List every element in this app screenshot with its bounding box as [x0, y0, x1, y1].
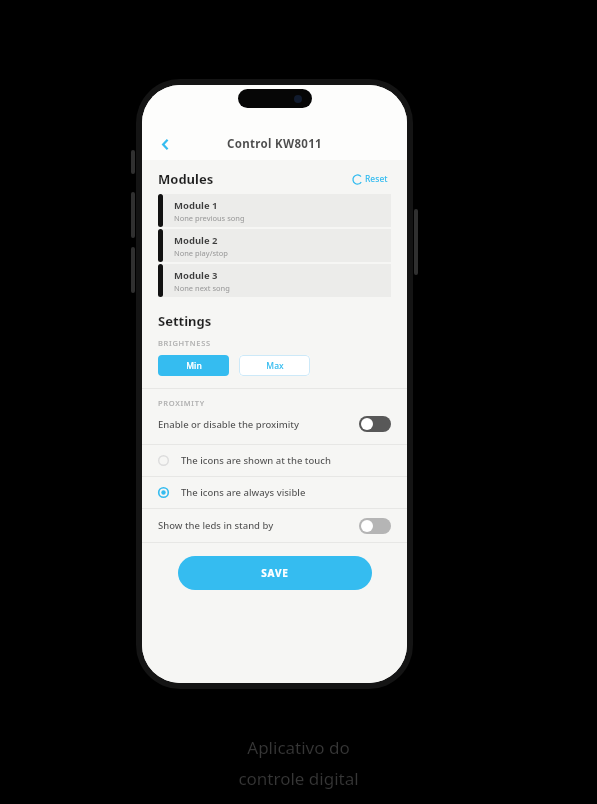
- button[interactable]: Module 3: [158, 264, 391, 297]
- staticText: The icons are shown at the touch: [181, 454, 331, 467]
- staticText: Module 1: [174, 199, 218, 212]
- button[interactable]: Toggle: [359, 518, 391, 534]
- button[interactable]: Back: [153, 132, 177, 156]
- button[interactable]: Max: [239, 355, 310, 376]
- staticText: Max: [266, 360, 284, 372]
- button[interactable]: The icons are shown at the touch: [142, 445, 407, 476]
- button[interactable]: Show the leds in stand by: [142, 509, 407, 542]
- staticText: BRIGHTNESS: [158, 338, 211, 348]
- staticText: Min: [186, 360, 202, 372]
- staticText: Modules: [158, 170, 214, 188]
- button[interactable]: Enable or disable the proximity: [142, 412, 407, 436]
- staticText: The icons are always visible: [181, 486, 306, 499]
- staticText: Module 2: [174, 234, 218, 247]
- button[interactable]: Reset: [350, 170, 391, 188]
- staticText: Module 3: [174, 269, 218, 282]
- staticText: None play/stop: [174, 248, 228, 258]
- staticText: None next song: [174, 283, 230, 293]
- staticText: Show the leds in stand by: [158, 519, 274, 532]
- staticText: controle digital: [238, 767, 359, 790]
- button[interactable]: SAVE: [178, 556, 372, 590]
- button[interactable]: The icons are always visible: [142, 477, 407, 508]
- staticText: Settings: [158, 312, 212, 330]
- staticText: None previous song: [174, 213, 245, 223]
- staticText: SAVE: [261, 566, 289, 580]
- button[interactable]: Toggle: [359, 416, 391, 432]
- button[interactable]: Module 1: [158, 194, 391, 227]
- staticText: Enable or disable the proximity: [158, 418, 300, 431]
- staticText: Control KW8011: [227, 136, 322, 152]
- staticText: Reset: [365, 173, 388, 185]
- staticText: PROXIMITY: [158, 398, 205, 408]
- button[interactable]: Min: [158, 355, 229, 376]
- staticText: Aplicativo do: [247, 736, 350, 759]
- button[interactable]: Module 2: [158, 229, 391, 262]
